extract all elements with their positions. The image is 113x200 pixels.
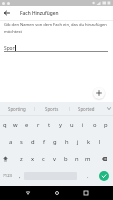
button[interactable]: Startseite [50,186,64,200]
button[interactable]: a [5,133,16,150]
staticText: w [13,121,18,129]
staticText: z [20,155,23,163]
staticText: t [48,121,51,129]
button[interactable]: y [55,116,66,133]
button[interactable]: p [100,116,111,133]
staticText: ?123 [3,173,13,179]
staticText: Fach Hinzufügen [20,10,59,17]
staticText: g [53,138,57,146]
staticText: f [43,138,45,146]
button[interactable]: l [94,133,105,150]
button[interactable]: z [16,150,27,167]
staticText: s [20,138,23,146]
staticText: a [9,138,13,146]
button[interactable]: t [44,116,55,133]
button[interactable]: c [38,150,49,167]
staticText: j [77,138,79,146]
button[interactable]: q [0,116,10,133]
button[interactable]: s [16,133,27,150]
staticText: l [99,138,101,146]
button[interactable]: h [61,133,72,150]
staticText: c [42,155,45,163]
button[interactable]: Sporting [0,102,34,115]
button[interactable]: v [49,150,60,167]
button[interactable]: o [89,116,100,133]
button[interactable]: Rücktaste [96,150,113,167]
button[interactable]: d [27,133,38,150]
button[interactable]: ?123 [0,167,16,184]
staticText: . [87,172,89,179]
button[interactable]: Zurück [21,186,35,200]
button[interactable]: Sports [34,102,69,115]
button[interactable]: Punkt [83,167,93,184]
staticText: x [31,155,35,163]
button[interactable]: w [10,116,21,133]
button[interactable]: Umschalttaste [0,150,11,167]
staticText: v [53,155,56,163]
staticText: y [59,121,62,129]
staticText: d [31,138,35,146]
staticText: n [75,155,79,163]
staticText: , [19,172,21,179]
staticText: p [104,121,108,129]
button[interactable]: f [38,133,49,150]
staticText: q [3,121,7,129]
staticText: Sports [45,106,59,112]
staticText: k [87,138,91,146]
button[interactable]: i [77,116,88,133]
staticText: b [64,155,68,163]
button[interactable]: k [83,133,94,150]
staticText: o [93,121,97,129]
button[interactable]: Komma [15,167,25,184]
button[interactable]: b [60,150,71,167]
staticText: Sport [4,45,17,52]
staticText: Sported [78,106,95,112]
button[interactable]: Sported [69,102,104,115]
staticText: u [70,121,74,129]
button[interactable]: u [66,116,77,133]
button[interactable]: n [71,150,82,167]
button[interactable]: e [21,116,32,133]
staticText: e [25,121,29,129]
button[interactable]: Fertig [94,167,113,184]
staticText: Sporting [8,106,26,112]
button[interactable]: Zurück [0,6,14,20]
button[interactable]: Hinzufügen [93,87,105,99]
button[interactable]: r [33,116,44,133]
button[interactable]: g [49,133,60,150]
button[interactable]: x [27,150,38,167]
staticText: i [82,121,84,129]
button[interactable]: j [72,133,83,150]
staticText: m [85,155,91,163]
button[interactable]: Weitere Vorschläge [104,102,113,115]
staticText: h [65,138,69,146]
button[interactable]: m [82,150,93,167]
staticText: r [37,121,40,129]
button[interactable]: Übersicht [79,186,93,200]
staticText: Gib den Namen von dem Fach ein, das du h… [4,22,112,35]
